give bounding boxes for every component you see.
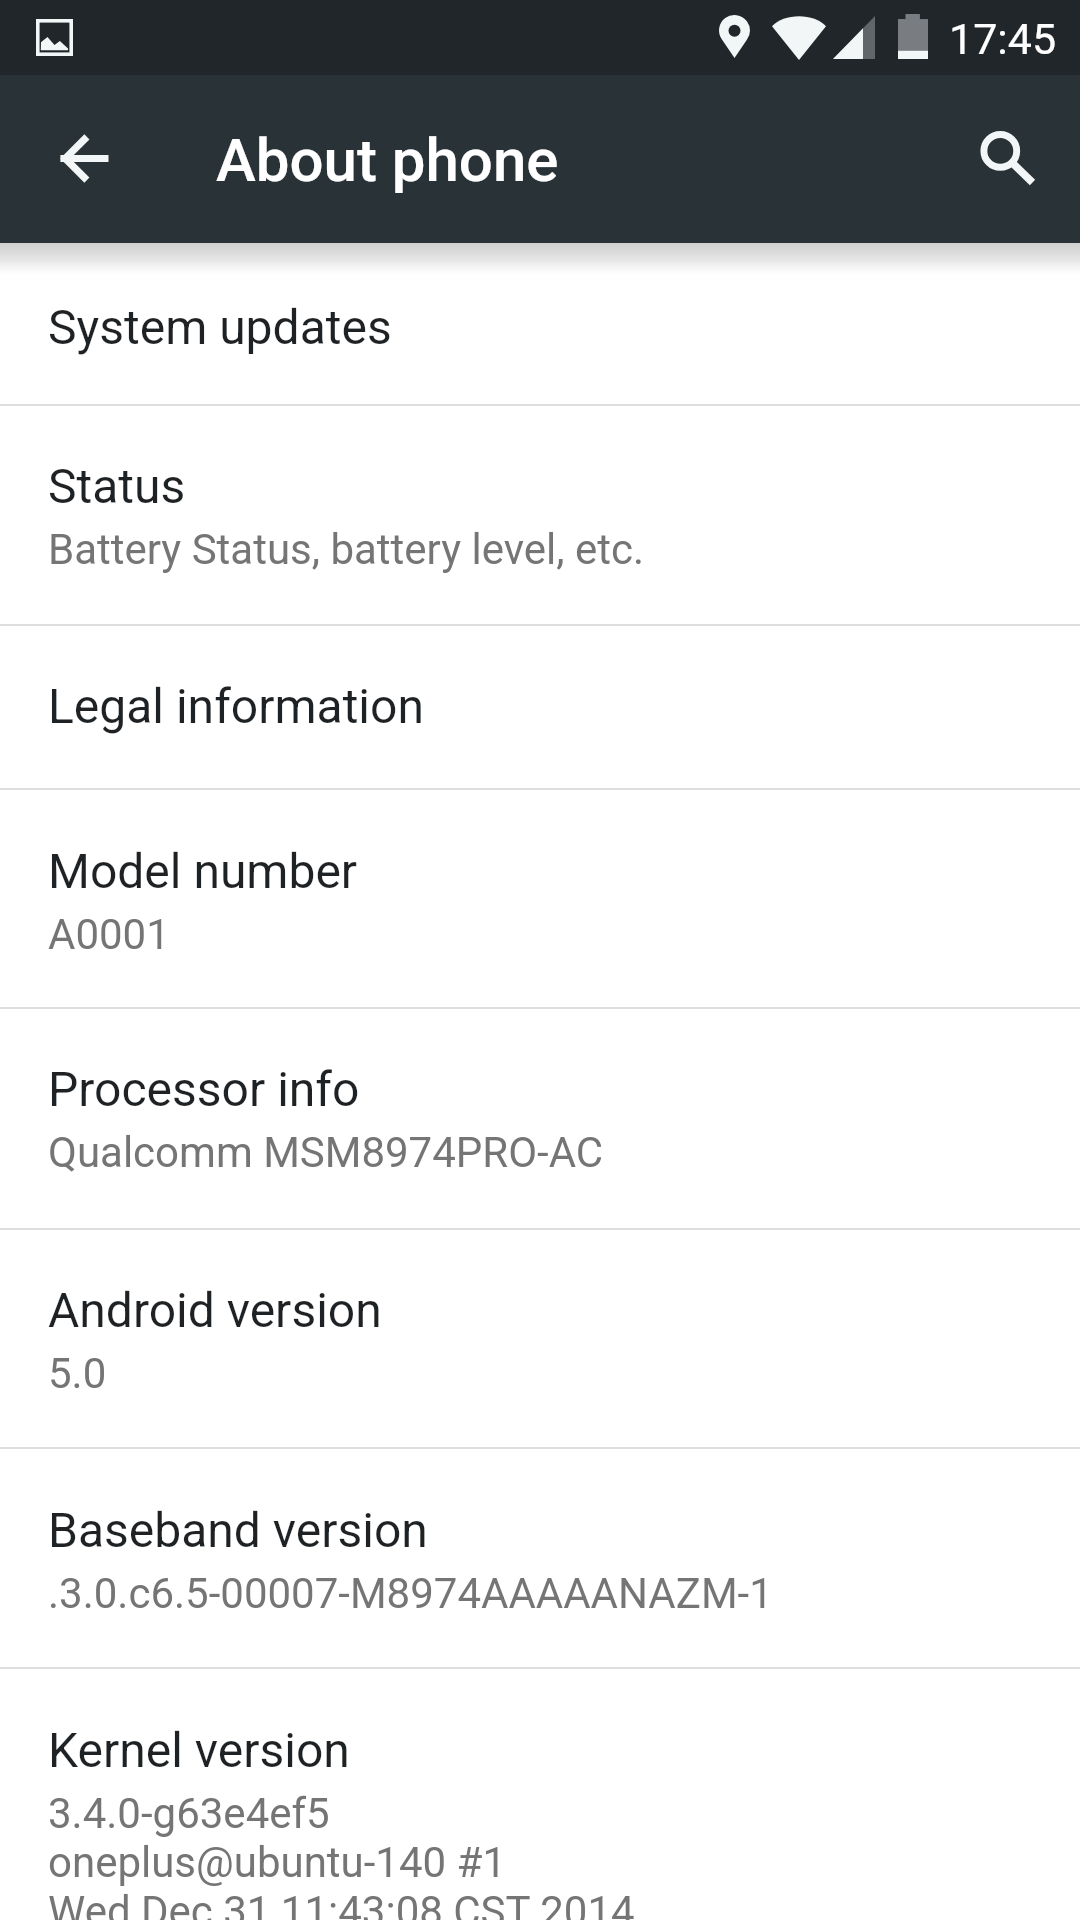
staticText: 3.4.0-g63e4ef5 oneplus@ubuntu-140 #1 Wed… [48,1789,635,1920]
staticText: Model number [48,843,358,899]
staticText: 5.0 [48,1349,107,1398]
staticText: About phone [216,125,559,195]
staticText: 17:45 [949,14,1057,64]
staticText: Processor info [48,1061,360,1117]
button[interactable]: Back [19,94,149,224]
staticText: System updates [48,299,392,355]
staticText: Qualcomm MSM8974PRO-AC [48,1128,604,1177]
staticText: Baseband version [48,1502,428,1558]
staticText: .3.0.c6.5-00007-M8974AAAAANAZM-1 [48,1569,773,1618]
staticText: Legal information [48,678,424,734]
button[interactable]: Legal information [0,626,1080,790]
staticText: Android version [48,1282,382,1338]
button[interactable]: Kernel version [0,1669,1080,1920]
button[interactable]: Baseband version [0,1449,1080,1669]
staticText: Status [48,458,186,514]
button[interactable]: System updates [0,243,1080,406]
staticText: Kernel version [48,1722,350,1778]
staticText: A0001 [48,910,170,959]
button[interactable]: Android version [0,1230,1080,1449]
button[interactable]: Search [935,94,1065,224]
button[interactable]: Model number [0,790,1080,1009]
staticText: Battery Status, battery level, etc. [48,525,645,574]
button[interactable]: Processor info [0,1009,1080,1230]
button[interactable]: Status [0,406,1080,626]
